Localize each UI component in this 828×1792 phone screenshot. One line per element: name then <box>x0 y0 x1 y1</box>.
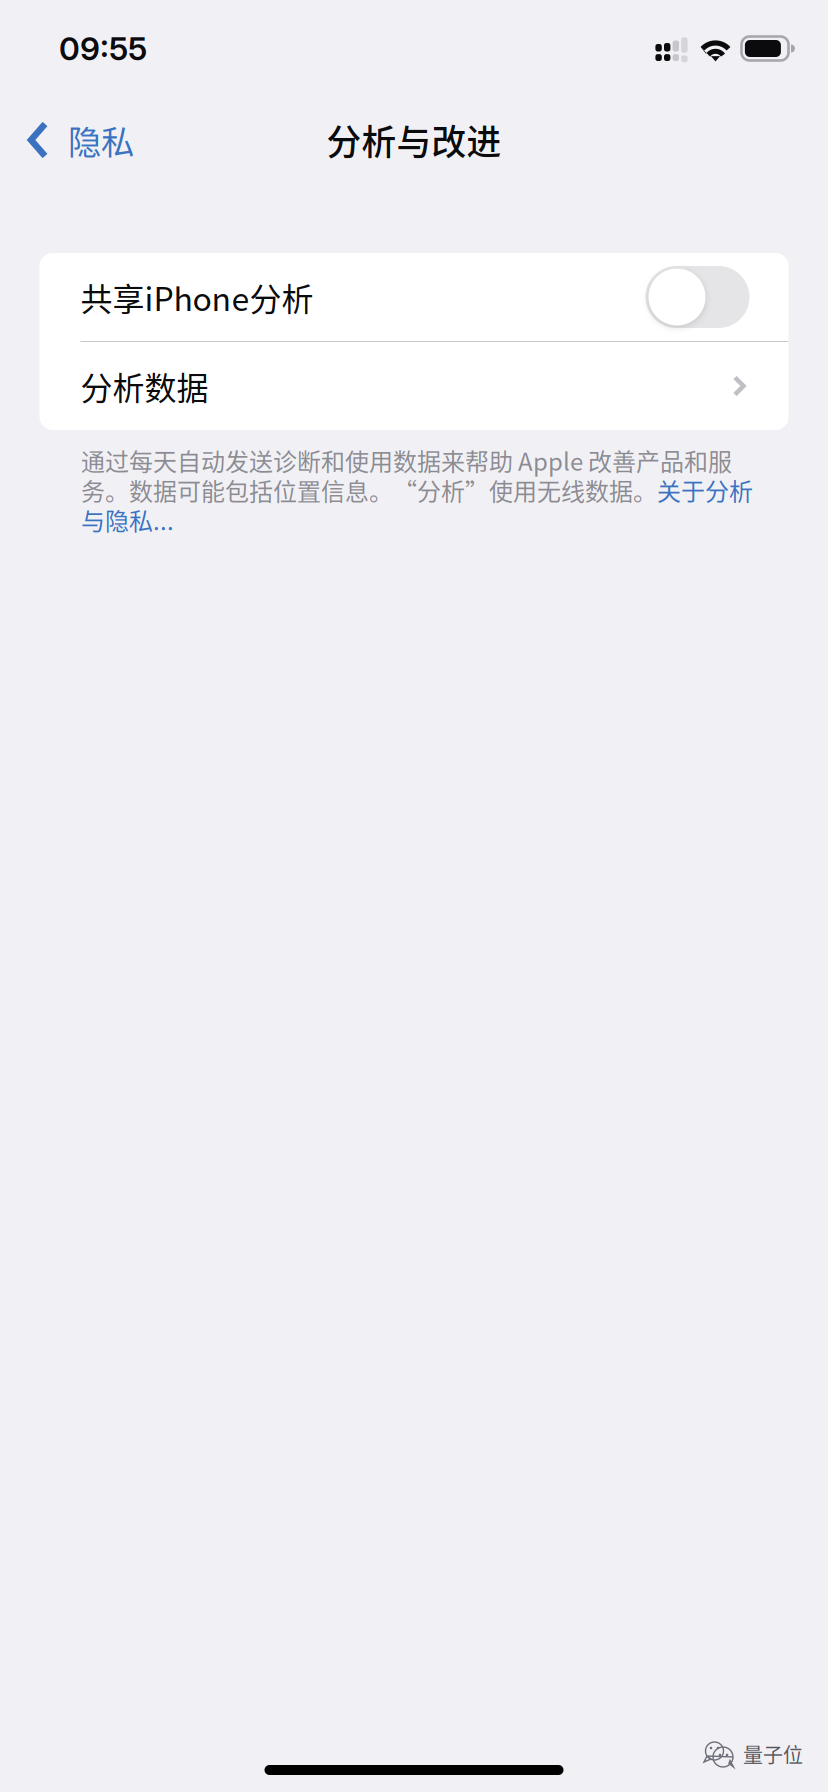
staticText: 分析数据 <box>80 363 208 409</box>
button[interactable]: 共享iPhone分析 <box>39 253 788 341</box>
staticText: 09:55 <box>59 29 147 68</box>
button[interactable]: 隐私 <box>17 102 144 178</box>
staticText: 通过每天自动发送诊断和使用数据来帮助 Apple 改善产品和服务。数据可能包括位… <box>81 443 753 537</box>
staticText: 分析与改进 <box>326 115 501 165</box>
staticText: 隐私 <box>68 116 134 164</box>
staticText: 共享iPhone分析 <box>80 274 313 320</box>
button[interactable]: 分析数据 <box>39 342 788 430</box>
staticText: 量子位 <box>743 1739 803 1768</box>
